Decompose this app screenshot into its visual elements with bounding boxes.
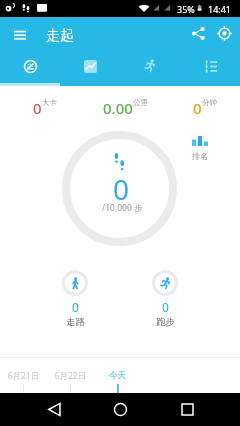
button[interactable]: Back [36,393,72,426]
staticText: 公里 [133,98,148,107]
staticText: 0 [193,98,202,116]
button[interactable]: Chart [60,50,120,82]
button[interactable]: Home [102,393,138,426]
staticText: 35% [177,3,195,15]
staticText: 跑步 [156,316,175,328]
button[interactable]: 6月22日 [47,357,94,393]
staticText: 14:41 [208,3,232,15]
button[interactable]: Recents [169,393,205,426]
staticText: 大卡 [42,98,57,107]
button[interactable]: Menu [7,17,33,50]
button[interactable]: 今天 [94,357,141,393]
staticText: 分钟 [202,98,217,107]
button[interactable]: Dashboard [0,50,60,82]
staticText: 今天 [94,370,141,381]
staticText: 0 [113,170,130,208]
staticText: 0.00 [103,98,133,116]
staticText: 0 [72,299,79,315]
button[interactable]: 6月21日 [0,357,47,393]
staticText: 0 [162,299,169,315]
staticText: 6月22日 [47,370,94,382]
button[interactable]: 0 [152,270,178,328]
button[interactable]: Run [120,50,180,82]
button[interactable]: 排名 [189,136,211,161]
button[interactable]: Locate [211,17,237,50]
staticText: 排名 [192,151,208,161]
staticText: 6月21日 [0,370,47,382]
button[interactable]: 0 [62,270,88,328]
button[interactable]: List [180,50,240,82]
staticText: 走起 [46,27,74,45]
staticText: /10,000 步 [102,202,143,214]
button[interactable]: Share [185,17,211,50]
staticText: 0 [33,98,42,116]
staticText: 走路 [66,316,85,328]
